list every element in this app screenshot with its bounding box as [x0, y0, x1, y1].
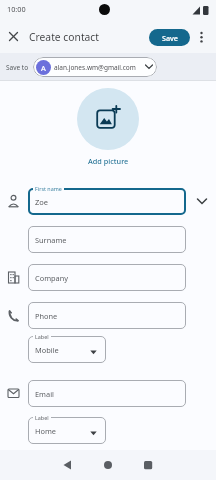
button[interactable]: Mobile — [28, 336, 106, 363]
button[interactable] — [134, 452, 162, 478]
staticText: 10:00 — [7, 4, 26, 14]
staticText: Create contact — [29, 30, 100, 44]
staticText: Zoe — [35, 197, 49, 207]
button[interactable]: Company — [28, 264, 186, 291]
staticText: Email — [35, 389, 54, 399]
staticText: A — [41, 63, 46, 73]
button[interactable]: Email — [28, 380, 186, 407]
staticText: Mobile — [35, 345, 59, 355]
button[interactable]: Phone — [28, 302, 186, 329]
button[interactable]: Surname — [28, 226, 186, 253]
button[interactable]: Save — [149, 29, 190, 46]
staticText: Surname — [35, 235, 67, 245]
button[interactable]: Home — [28, 417, 106, 444]
staticText: alan.jones.wm@gmail.com — [54, 63, 136, 72]
staticText: Save to — [6, 63, 29, 72]
staticText: First name — [35, 185, 62, 192]
staticText: Home — [35, 426, 57, 436]
staticText: Phone — [35, 311, 58, 321]
button[interactable] — [77, 88, 139, 150]
staticText: Save — [162, 33, 178, 43]
button[interactable] — [52, 452, 80, 478]
staticText: Label — [35, 333, 49, 340]
button[interactable]: Zoe — [28, 188, 186, 215]
button[interactable] — [7, 30, 20, 43]
button[interactable]: Add picture — [88, 156, 129, 166]
button[interactable] — [194, 193, 210, 209]
staticText: Company — [35, 273, 69, 283]
staticText: Label — [35, 414, 49, 421]
button[interactable]: A — [33, 57, 157, 77]
button[interactable] — [198, 30, 206, 44]
button[interactable] — [94, 452, 122, 478]
